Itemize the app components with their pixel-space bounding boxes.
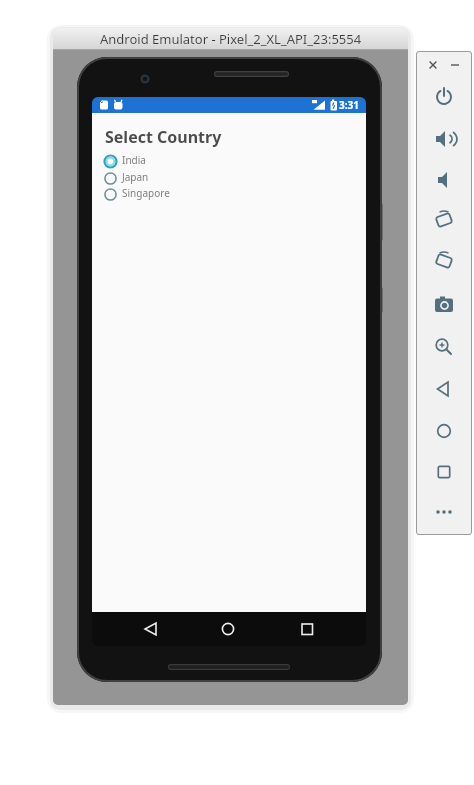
button[interactable]: Japan [104,168,149,185]
button[interactable] [132,616,168,642]
button[interactable] [432,168,456,192]
staticText: 3:31 [339,98,359,112]
button[interactable] [432,460,456,484]
staticText: Android Emulator - Pixel_2_XL_API_23:555… [100,30,362,48]
button[interactable] [289,616,325,642]
button[interactable] [432,500,456,524]
button[interactable] [210,616,246,642]
button[interactable] [432,249,456,273]
staticText: Select Country [105,126,222,148]
button[interactable] [432,293,456,317]
staticText: Singapore [122,186,170,200]
staticText: India [122,153,146,167]
button[interactable] [432,208,456,232]
button[interactable] [421,53,445,77]
button[interactable] [432,127,456,151]
button[interactable]: Singapore [104,184,170,201]
button[interactable] [432,85,456,109]
staticText: Japan [122,170,149,184]
button[interactable] [443,53,467,77]
button[interactable] [432,335,456,359]
button[interactable] [432,419,456,443]
button[interactable]: India [104,151,146,168]
button[interactable] [432,377,456,401]
